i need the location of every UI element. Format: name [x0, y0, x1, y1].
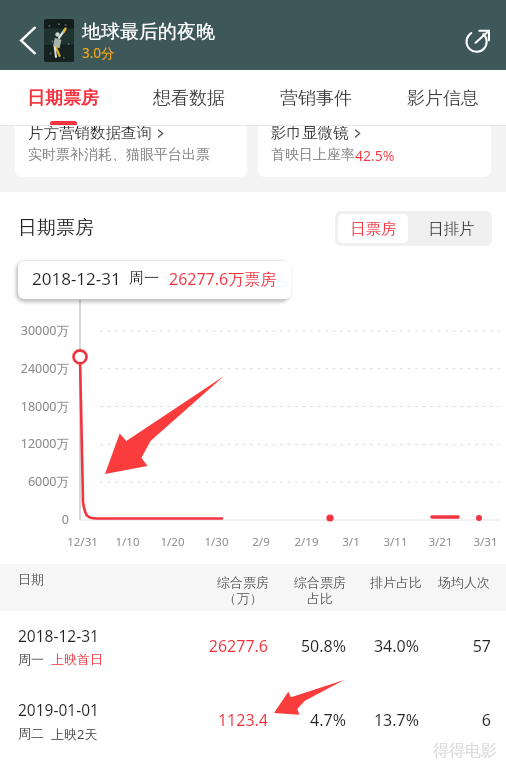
staticText: 日期 — [18, 571, 44, 587]
staticText: 1123.4 — [217, 709, 268, 731]
staticText: 3.0分 — [82, 44, 115, 62]
staticText: 2018-12-31 — [32, 267, 121, 290]
staticText: 得得电影 — [433, 741, 497, 761]
staticText: 57 — [472, 635, 491, 657]
staticText: 26277.6万票房 — [169, 268, 277, 290]
staticText: 30000万 — [20, 322, 69, 339]
button[interactable]: 影巾显微镜 — [258, 126, 491, 177]
staticText: 首映日上座率 — [271, 146, 355, 164]
staticText: 6 — [481, 709, 491, 731]
staticText: 2/9 — [252, 534, 270, 550]
staticText: 2018-12-31 — [18, 625, 99, 646]
staticText: 34.0% — [373, 635, 419, 657]
staticText: 1/20 — [160, 534, 185, 550]
button[interactable]: Back — [0, 0, 44, 70]
button[interactable]: 影片信息 — [379, 70, 506, 126]
staticText: 3/31 — [473, 534, 498, 550]
staticText: 日期票房 — [18, 216, 94, 240]
staticText: 影巾显微镜 — [271, 126, 349, 143]
button[interactable]: 片方营销数据查询 — [15, 126, 247, 177]
staticText: 想看数据 — [153, 87, 225, 110]
staticText: 地球最后的夜晚 — [82, 20, 215, 44]
button[interactable]: 日期票房 — [0, 70, 126, 126]
staticText: 12/31 — [67, 534, 98, 550]
button[interactable]: 2019-01-01 — [0, 685, 506, 769]
staticText: 综合票房 占比 — [294, 574, 346, 607]
staticText: 综合票房 （万） — [217, 574, 269, 607]
staticText: 1/30 — [204, 534, 229, 550]
staticText: 片方营销数据查询 — [28, 126, 152, 143]
button[interactable]: 日排片 — [411, 211, 492, 246]
staticText: 营销事件 — [280, 87, 352, 110]
staticText: 13.7% — [373, 709, 419, 731]
staticText: 3/1 — [342, 534, 360, 550]
staticText: 6000万 — [27, 473, 69, 490]
staticText: 2019-01-01 — [18, 699, 99, 720]
staticText: 12000万 — [20, 435, 69, 452]
button[interactable]: 日票房 — [338, 214, 408, 243]
button[interactable]: 2018-12-31 — [0, 611, 506, 685]
button[interactable]: 想看数据 — [126, 70, 252, 126]
staticText: 上映首日 — [51, 651, 103, 667]
staticText: 42.5% — [355, 146, 395, 165]
staticText: 1/10 — [115, 534, 140, 550]
staticText: 4.7% — [310, 709, 346, 731]
staticText: 日排片 — [428, 219, 475, 239]
staticText: 0 — [61, 511, 69, 528]
button[interactable]: Share — [448, 0, 506, 70]
staticText: 上映2天 — [51, 725, 98, 743]
staticText: 实时票补消耗、猫眼平台出票 — [28, 146, 210, 164]
staticText: 18000万 — [20, 398, 69, 415]
button[interactable]: 营销事件 — [252, 70, 379, 126]
staticText: 日期票房 — [27, 87, 99, 110]
staticText: 场均人次 — [438, 574, 490, 590]
staticText: 周一 — [18, 651, 44, 667]
staticText: 日票房 — [350, 219, 397, 239]
staticText: 24000万 — [20, 360, 69, 377]
staticText: 3/11 — [383, 534, 408, 550]
staticText: 3/21 — [428, 534, 453, 550]
staticText: 影片信息 — [407, 87, 479, 110]
staticText: 2/19 — [294, 534, 319, 550]
staticText: 50.8% — [300, 635, 346, 657]
staticText: 周一 — [129, 269, 159, 288]
staticText: 排片占比 — [370, 574, 422, 590]
staticText: 26277.6 — [208, 635, 268, 657]
staticText: 周二 — [18, 725, 44, 741]
